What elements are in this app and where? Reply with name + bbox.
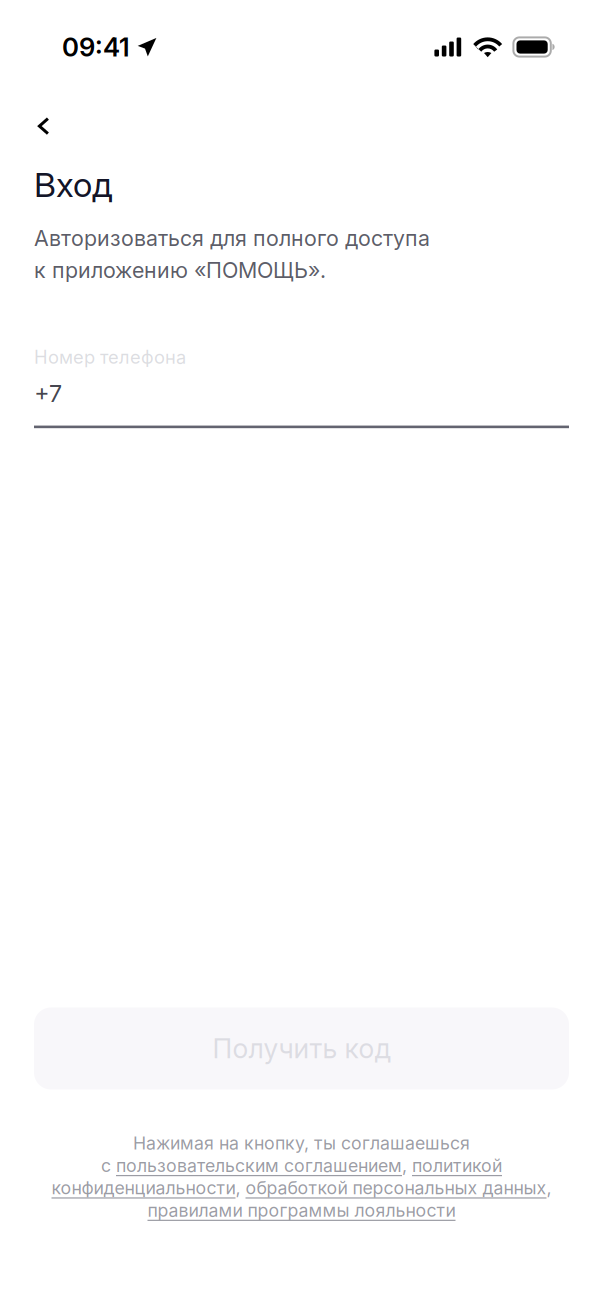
staticText: Авторизоваться для полного доступа [34, 225, 430, 251]
staticText: Нажимая на кнопку, ты соглашаешься [133, 1132, 470, 1154]
button[interactable]: обработкой персональных данных [245, 1177, 546, 1199]
staticText: , [235, 1177, 245, 1199]
staticText: 09:41 [62, 31, 130, 63]
button[interactable]: конфиденциальности [51, 1177, 235, 1199]
staticText: Номер телефона [34, 346, 186, 368]
staticText: с [101, 1155, 116, 1176]
staticText: обработкой персональных данных [245, 1177, 546, 1199]
button[interactable]: пользовательским соглашением [116, 1155, 402, 1176]
button[interactable]: политикой [412, 1155, 502, 1176]
staticText: к приложению «ПОМОЩЬ». [34, 257, 326, 283]
staticText: конфиденциальности [51, 1177, 235, 1199]
staticText: Вход [34, 164, 112, 205]
button[interactable]: Получить код [34, 1007, 569, 1089]
staticText: политикой [412, 1155, 502, 1176]
staticText: Получить код [212, 1032, 390, 1065]
staticText: , [402, 1155, 412, 1176]
staticText: +7 [34, 379, 62, 408]
button[interactable]: правилами программы лояльности [147, 1200, 455, 1221]
button[interactable]: Back [20, 102, 68, 150]
staticText: пользовательским соглашением [116, 1155, 402, 1176]
staticText: , [546, 1177, 551, 1199]
staticText: правилами программы лояльности [147, 1200, 455, 1221]
